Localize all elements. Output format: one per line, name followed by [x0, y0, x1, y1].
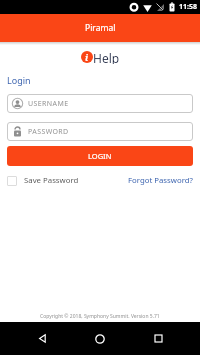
button[interactable]: PASSWORD: [7, 122, 193, 141]
button[interactable]: Save Password: [7, 175, 79, 186]
staticText: PASSWORD: [28, 127, 69, 137]
staticText: Login: [7, 74, 31, 86]
staticText: USERNAME: [28, 99, 69, 109]
staticText: 11:58: [179, 2, 197, 12]
staticText: LOGIN: [88, 151, 112, 161]
button[interactable]: [13, 322, 71, 355]
button[interactable]: USERNAME: [7, 94, 193, 113]
staticText: Help: [93, 50, 120, 64]
staticText: Forgot Password?: [128, 175, 193, 186]
staticText: Save Password: [24, 175, 79, 186]
button[interactable]: Forgot Password?: [128, 175, 193, 186]
staticText: Piramal: [85, 22, 116, 34]
staticText: i: [85, 51, 89, 63]
button[interactable]: LOGIN: [7, 146, 193, 166]
button[interactable]: [129, 322, 187, 355]
staticText: Copyright © 2018, Symphony Summit. Versi…: [40, 313, 160, 320]
button[interactable]: [71, 322, 129, 355]
